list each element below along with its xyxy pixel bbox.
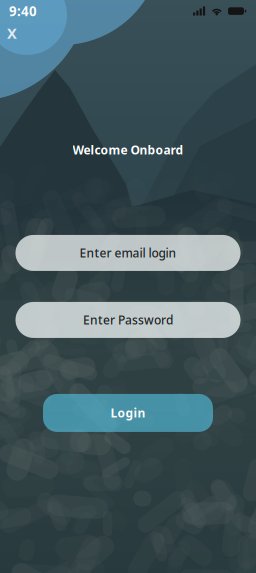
staticText: 9:40 <box>9 2 37 20</box>
button[interactable]: Enter email login <box>15 235 240 271</box>
staticText: Enter Password <box>83 312 173 328</box>
staticText: Login <box>110 405 145 421</box>
staticText: Enter email login <box>79 245 176 261</box>
button[interactable]: Login <box>43 394 213 432</box>
staticText: Welcome Onboard <box>72 142 183 158</box>
button[interactable]: Enter Password <box>15 302 240 338</box>
button[interactable]: Close <box>0 22 24 44</box>
staticText: X <box>7 23 17 43</box>
